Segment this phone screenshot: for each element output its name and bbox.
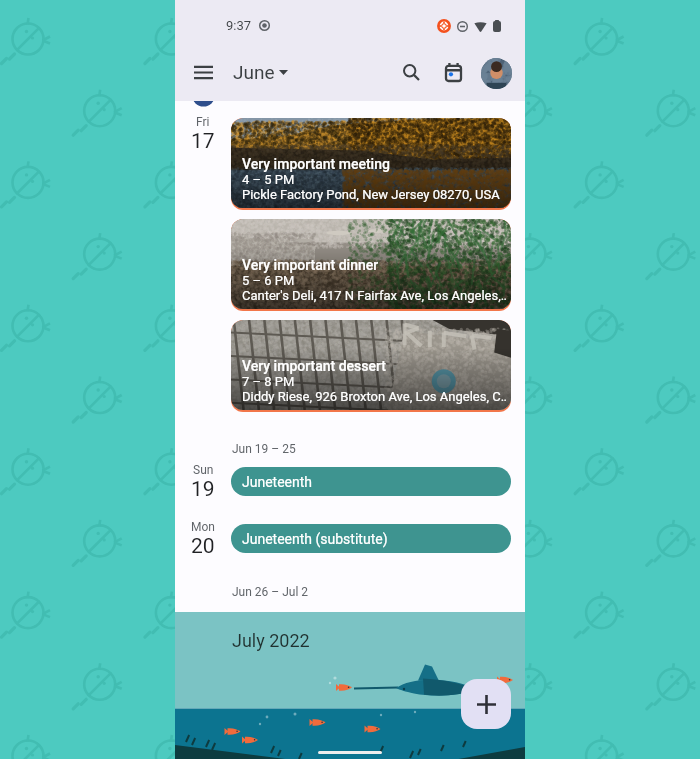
staticText: Diddy Riese, 926 Broxton Ave, Los Angele… bbox=[242, 389, 507, 404]
button[interactable]: Go to today bbox=[433, 52, 473, 92]
button[interactable]: Very important dessert bbox=[231, 320, 511, 412]
staticText: July 2022 bbox=[232, 630, 310, 651]
button[interactable]: Open navigation drawer bbox=[183, 52, 223, 92]
button[interactable]: Search bbox=[391, 52, 431, 92]
staticText: Juneteenth (substitute) bbox=[242, 531, 388, 547]
staticText: Fri bbox=[196, 115, 210, 129]
staticText: 7 – 8 PM bbox=[242, 374, 295, 389]
staticText: Canter's Deli, 417 N Fairfax Ave, Los An… bbox=[242, 288, 507, 303]
button[interactable]: Very important meeting bbox=[231, 118, 511, 210]
staticText: Very important dinner bbox=[242, 257, 379, 273]
button[interactable]: Very important dinner bbox=[231, 219, 511, 311]
staticText: Jun 26 – Jul 2 bbox=[232, 585, 309, 599]
button[interactable]: Juneteenth bbox=[231, 467, 511, 496]
staticText: Juneteenth bbox=[242, 474, 313, 490]
button[interactable]: Account bbox=[481, 58, 512, 89]
button[interactable]: Juneteenth (substitute) bbox=[231, 524, 511, 553]
staticText: June bbox=[233, 61, 275, 83]
staticText: 19 bbox=[191, 477, 215, 502]
staticText: 17 bbox=[191, 129, 215, 154]
staticText: Very important meeting bbox=[242, 156, 390, 172]
staticText: Jun 19 – 25 bbox=[232, 442, 296, 456]
staticText: 5 – 6 PM bbox=[242, 273, 295, 288]
staticText: 20 bbox=[191, 534, 215, 559]
staticText: Mon bbox=[191, 520, 215, 534]
button[interactable]: June bbox=[229, 57, 292, 87]
button[interactable]: Create event bbox=[461, 679, 511, 729]
staticText: Very important dessert bbox=[242, 358, 387, 374]
staticText: Sun bbox=[193, 463, 214, 477]
staticText: 4 – 5 PM bbox=[242, 172, 295, 187]
staticText: 9:37 bbox=[226, 18, 252, 33]
staticText: Pickle Factory Pond, New Jersey 08270, U… bbox=[242, 187, 500, 202]
